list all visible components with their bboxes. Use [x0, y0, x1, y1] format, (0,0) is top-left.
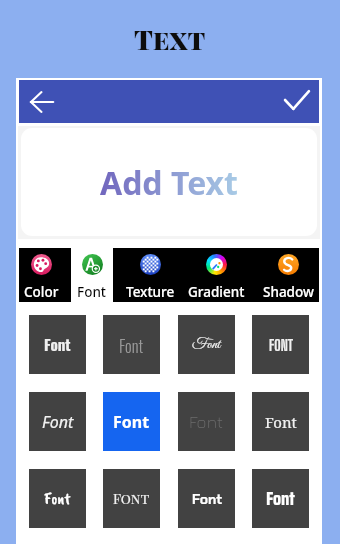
button[interactable]: Font — [103, 315, 160, 374]
staticText: FONT — [269, 336, 293, 354]
staticText: Texture — [126, 283, 175, 301]
button[interactable]: Font — [103, 392, 160, 451]
staticText: Font — [119, 333, 144, 357]
button[interactable]: Back — [23, 83, 61, 121]
staticText: Font — [77, 283, 107, 301]
button[interactable]: Font — [29, 315, 86, 374]
staticText: Font — [42, 411, 74, 433]
button[interactable]: Font — [29, 392, 86, 451]
button[interactable]: Add Text — [21, 128, 317, 236]
button[interactable]: Gradient — [179, 248, 253, 302]
button[interactable]: Font — [71, 248, 113, 302]
staticText: Font — [44, 333, 71, 356]
staticText: Font — [265, 412, 297, 432]
button[interactable]: Color — [19, 248, 64, 302]
staticText: Font — [44, 489, 71, 509]
button[interactable]: FONT — [252, 315, 309, 374]
staticText: Font — [192, 335, 221, 354]
button[interactable]: Font — [103, 469, 160, 528]
button[interactable]: Font — [29, 469, 86, 528]
button[interactable]: Font — [252, 392, 309, 451]
staticText: Text — [134, 21, 206, 57]
staticText: Gradient — [188, 283, 245, 301]
button[interactable]: Shadow — [251, 248, 325, 302]
staticText: Shadow — [263, 283, 314, 301]
staticText: Font — [192, 490, 222, 508]
button[interactable]: Font — [252, 469, 309, 528]
staticText: Font — [113, 489, 150, 508]
staticText: Font — [189, 411, 224, 432]
staticText: Color — [24, 283, 59, 301]
button[interactable]: Font — [178, 392, 235, 451]
button[interactable]: Done — [278, 83, 316, 121]
staticText: Add Text — [100, 161, 238, 205]
staticText: Font — [113, 411, 150, 433]
staticText: Font — [266, 484, 295, 513]
button[interactable]: Font — [178, 315, 235, 374]
button[interactable]: Font — [178, 469, 235, 528]
button[interactable]: Texture — [113, 248, 187, 302]
